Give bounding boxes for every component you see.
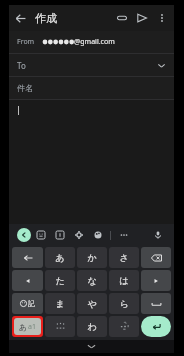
staticText: 記: [28, 299, 35, 308]
button[interactable]: は: [109, 270, 139, 291]
button[interactable]: Backspace: [141, 247, 171, 268]
staticText: あ: [19, 322, 28, 332]
button[interactable]: わ: [77, 316, 107, 337]
button[interactable]: た: [45, 270, 75, 291]
staticText: や: [87, 298, 97, 309]
button[interactable]: [109, 316, 139, 337]
staticText: あ: [55, 252, 65, 263]
staticText: To: [17, 60, 26, 71]
staticText: a1: [28, 322, 36, 332]
staticText: は: [119, 275, 129, 286]
button[interactable]: Back: [9, 7, 31, 29]
button[interactable]: Undo: [12, 247, 43, 268]
button[interactable]: Send: [132, 8, 152, 28]
button[interactable]: More options: [152, 8, 172, 28]
button[interactable]: あ: [45, 247, 75, 268]
button[interactable]: [45, 316, 75, 337]
staticText: わ: [87, 321, 97, 332]
button[interactable]: Back: [17, 228, 31, 242]
button[interactable]: か: [77, 247, 107, 268]
button[interactable]: Switch input mode: [14, 318, 41, 335]
button[interactable]: [9, 100, 174, 224]
button[interactable]: ま: [45, 293, 75, 314]
staticText: た: [55, 275, 65, 286]
button[interactable]: To: [9, 54, 174, 76]
button[interactable]: Theme: [88, 225, 107, 245]
button[interactable]: 件名: [9, 77, 174, 99]
button[interactable]: Space: [141, 293, 171, 314]
staticText: ま: [55, 298, 65, 309]
staticText: か: [87, 252, 97, 263]
button[interactable]: Emoji: [31, 225, 50, 245]
staticText: From: [17, 37, 35, 47]
staticText: 作成: [35, 11, 57, 25]
button[interactable]: Enter: [141, 316, 171, 337]
button[interactable]: Symbols: [12, 293, 43, 314]
button[interactable]: More: [114, 225, 133, 245]
button[interactable]: Attach file: [112, 8, 132, 28]
button[interactable]: や: [77, 293, 107, 314]
staticText: さ: [119, 252, 129, 263]
button[interactable]: さ: [109, 247, 139, 268]
button[interactable]: Cursor left: [12, 270, 43, 291]
button[interactable]: Clipboard: [50, 225, 69, 245]
button[interactable]: From: [9, 31, 174, 53]
staticText: @gmail.com: [74, 37, 115, 47]
button[interactable]: Voice input: [148, 225, 167, 245]
button[interactable]: ら: [109, 293, 139, 314]
staticText: 件名: [17, 83, 33, 93]
staticText: な: [87, 275, 97, 286]
staticText: ら: [119, 298, 129, 309]
button[interactable]: Settings: [69, 225, 88, 245]
button[interactable]: な: [77, 270, 107, 291]
button[interactable]: Cursor right: [141, 270, 171, 291]
